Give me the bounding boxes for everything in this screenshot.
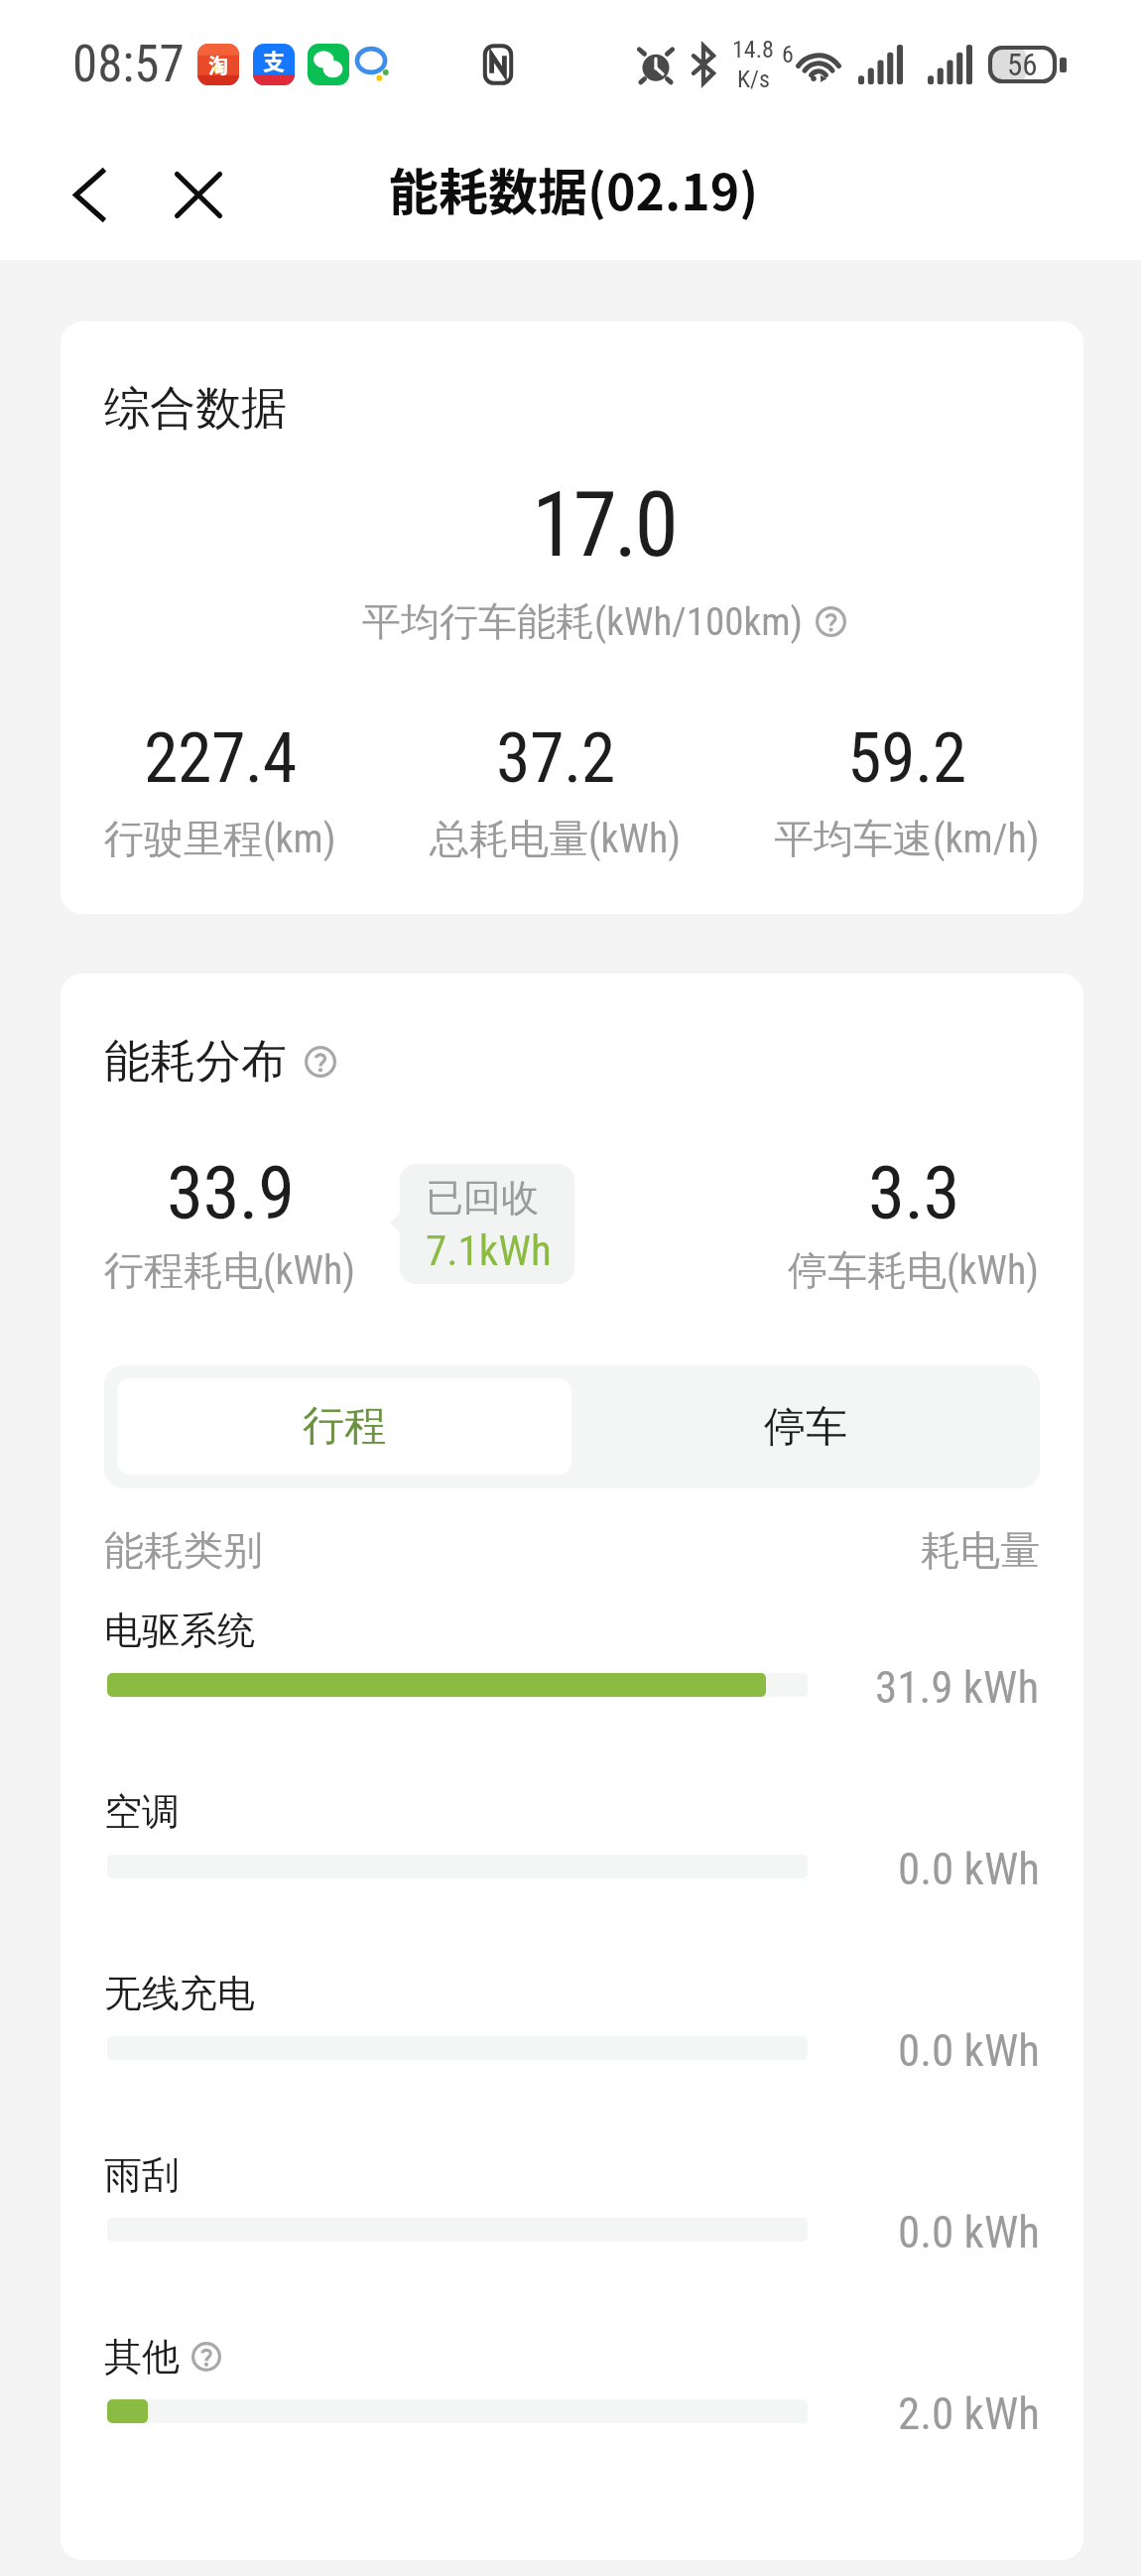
staticText: 0.0 kWh <box>898 2206 1040 2254</box>
staticText: 空调 <box>104 1788 180 1836</box>
staticText: 6 <box>782 41 794 68</box>
button[interactable]: Back <box>45 129 134 260</box>
staticText: 0.0 kWh <box>898 1843 1040 1890</box>
staticText: 停车耗电(kWh) <box>788 1245 1040 1295</box>
staticText: 227.4 <box>144 717 297 799</box>
staticText: 0.0 kWh <box>898 2024 1040 2072</box>
button[interactable]: Close <box>154 129 243 260</box>
staticText: 行驶里程(km) <box>104 814 336 863</box>
staticText: 雨刮 <box>104 2151 180 2199</box>
staticText: 耗电量 <box>921 1525 1040 1575</box>
staticText: 综合数据 <box>104 380 287 438</box>
staticText: 支 <box>263 44 286 75</box>
staticText: 平均行车能耗(kWh/100km) <box>362 597 803 646</box>
staticText: 2.0 kWh <box>898 2387 1040 2435</box>
staticText: 电驱系统 <box>104 1607 255 1654</box>
staticText: 14.8 <box>732 36 774 64</box>
staticText: 行程 <box>303 1400 386 1453</box>
staticText: 7.1kWh <box>426 1225 552 1275</box>
staticText: 已回收 <box>426 1174 539 1222</box>
staticText: 其他 <box>104 2333 180 2381</box>
staticText: 17.0 <box>532 473 677 578</box>
staticText: 56 <box>1007 47 1038 82</box>
staticText: 总耗电量(kWh) <box>430 814 682 863</box>
staticText: 3.3 <box>868 1149 960 1236</box>
staticText: 31.9 kWh <box>875 1661 1040 1709</box>
staticText: 淘 <box>208 51 228 79</box>
staticText: K/s <box>737 65 770 93</box>
button[interactable]: 行程 <box>117 1378 571 1475</box>
staticText: 33.9 <box>167 1149 295 1236</box>
staticText: 能耗类别 <box>104 1525 263 1575</box>
staticText: 59.2 <box>847 717 966 799</box>
staticText: 08:57 <box>72 35 185 94</box>
staticText: 能耗分布 <box>104 1033 287 1091</box>
button[interactable]: 停车 <box>571 1365 1040 1488</box>
staticText: 停车 <box>764 1401 847 1454</box>
staticText: 无线充电 <box>104 1970 255 2017</box>
staticText: 行程耗电(kWh) <box>104 1245 356 1295</box>
staticText: 能耗数据(02.19) <box>389 153 759 224</box>
staticText: 37.2 <box>496 717 615 799</box>
staticText: 平均车速(km/h) <box>774 814 1040 863</box>
